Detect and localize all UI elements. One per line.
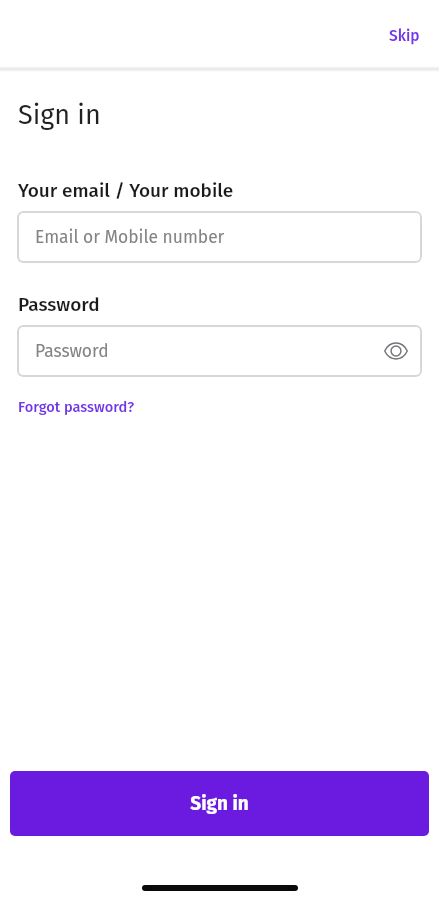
staticText: Your email / Your mobile xyxy=(18,179,234,202)
button[interactable]: Skip xyxy=(380,17,427,52)
staticText: Password xyxy=(18,293,100,316)
button[interactable]: Forgot password? xyxy=(18,398,135,416)
button[interactable]: Show password xyxy=(376,331,416,371)
staticText: Skip xyxy=(389,27,420,46)
staticText: Forgot password? xyxy=(18,398,135,416)
staticText: Sign in xyxy=(190,792,249,815)
staticText: Sign in xyxy=(18,99,101,131)
staticText: Password xyxy=(35,341,109,362)
button[interactable]: Sign in xyxy=(10,771,429,836)
button[interactable]: Password xyxy=(17,325,422,377)
button[interactable]: Email or Mobile number xyxy=(17,211,422,263)
staticText: Email or Mobile number xyxy=(35,227,225,248)
